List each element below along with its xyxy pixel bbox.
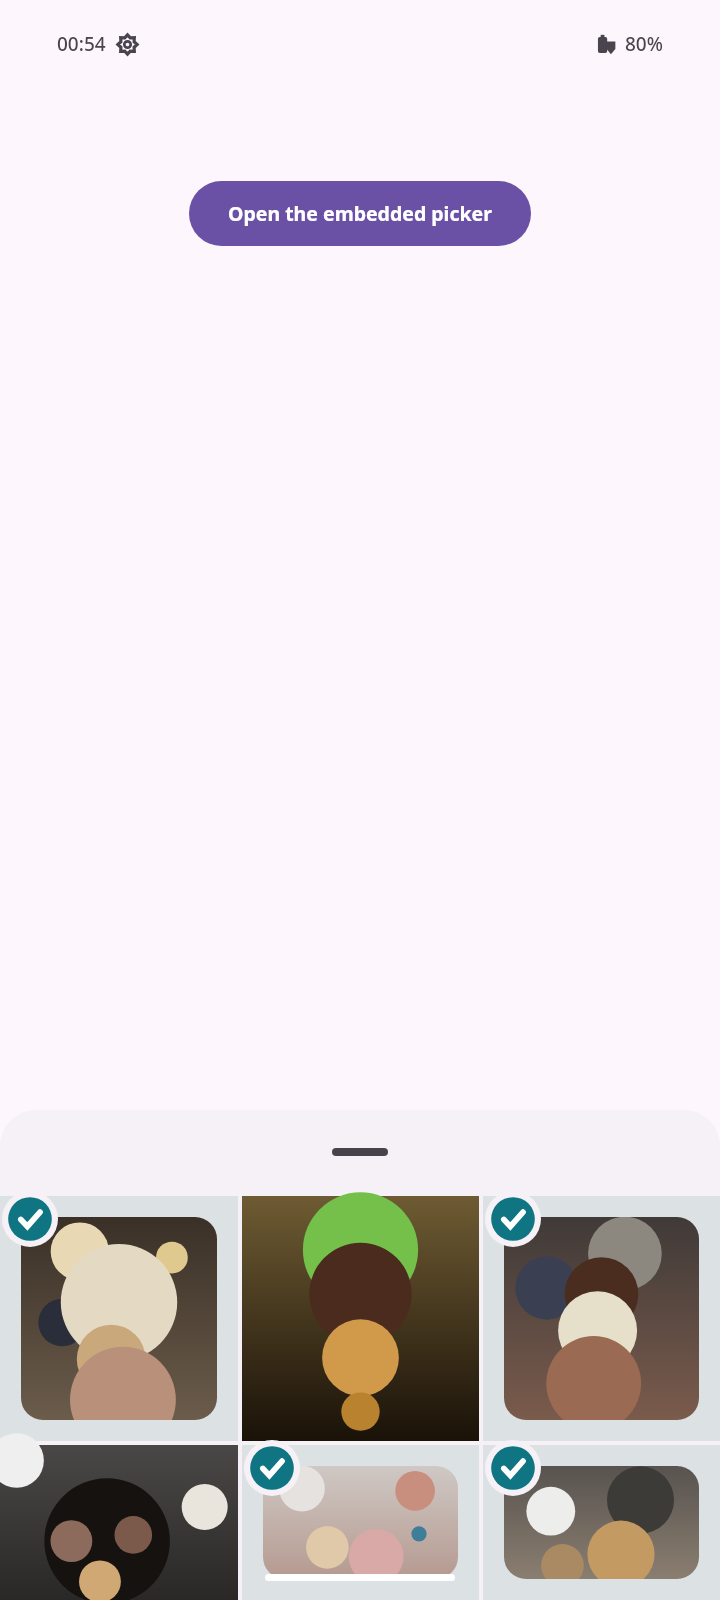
button[interactable]: Selected photo xyxy=(242,1445,479,1600)
button[interactable]: Photo xyxy=(0,1445,238,1600)
button[interactable]: Selected photo xyxy=(483,1445,720,1600)
staticText: 00:54 xyxy=(57,31,106,57)
staticText: 80% xyxy=(625,31,663,57)
staticText: Open the embedded picker xyxy=(228,200,492,227)
button[interactable]: Selected photo xyxy=(483,1196,720,1441)
button[interactable]: Selected photo xyxy=(0,1196,238,1441)
button[interactable]: Photo xyxy=(242,1196,479,1441)
button[interactable]: Open the embedded picker xyxy=(189,181,531,246)
button[interactable]: Drag handle xyxy=(332,1148,388,1156)
